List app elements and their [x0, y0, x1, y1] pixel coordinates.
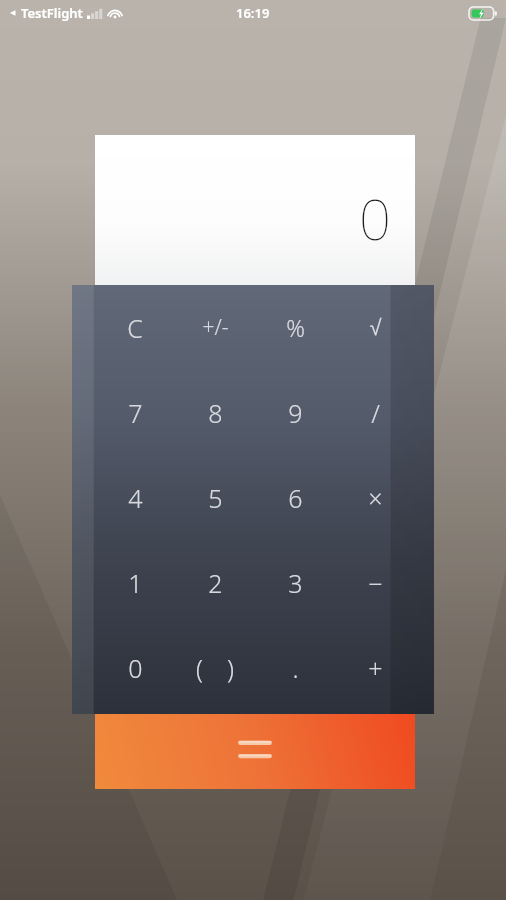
- staticText: 1: [128, 566, 143, 600]
- staticText: /: [371, 396, 380, 430]
- button[interactable]: 4: [95, 455, 175, 540]
- staticText: 0: [359, 180, 391, 256]
- staticText: 4: [128, 481, 143, 515]
- staticText: 3: [288, 566, 303, 600]
- button[interactable]: 1: [95, 540, 175, 625]
- staticText: +/-: [202, 313, 229, 342]
- staticText: ): [227, 651, 234, 685]
- staticText: TestFlight: [21, 4, 83, 22]
- button[interactable]: Equals: [95, 714, 415, 789]
- button[interactable]: .: [255, 625, 335, 710]
- staticText: 7: [128, 396, 143, 430]
- staticText: 6: [288, 481, 303, 515]
- staticText: .: [292, 651, 299, 685]
- button[interactable]: ( ): [175, 625, 255, 710]
- staticText: 2: [208, 566, 223, 600]
- button[interactable]: ×: [335, 455, 415, 540]
- staticText: 16:19: [236, 4, 270, 22]
- button[interactable]: 9: [255, 370, 335, 455]
- staticText: √: [369, 315, 382, 340]
- staticText: 5: [208, 481, 223, 515]
- button[interactable]: 7: [95, 370, 175, 455]
- button[interactable]: C: [95, 285, 175, 370]
- button[interactable]: 0: [95, 625, 175, 710]
- staticText: %: [286, 312, 305, 343]
- button[interactable]: %: [255, 285, 335, 370]
- staticText: ×: [368, 481, 383, 515]
- button[interactable]: −: [335, 540, 415, 625]
- staticText: 8: [208, 396, 223, 430]
- button[interactable]: 2: [175, 540, 255, 625]
- button[interactable]: /: [335, 370, 415, 455]
- staticText: (: [196, 651, 203, 685]
- staticText: 0: [128, 651, 143, 685]
- button[interactable]: √: [335, 285, 415, 370]
- button[interactable]: +: [335, 625, 415, 710]
- button[interactable]: 3: [255, 540, 335, 625]
- button[interactable]: 5: [175, 455, 255, 540]
- button[interactable]: +/-: [175, 285, 255, 370]
- button[interactable]: 6: [255, 455, 335, 540]
- staticText: −: [368, 566, 383, 600]
- button[interactable]: 8: [175, 370, 255, 455]
- staticText: +: [368, 651, 383, 685]
- staticText: 9: [288, 396, 303, 430]
- staticText: C: [127, 311, 143, 345]
